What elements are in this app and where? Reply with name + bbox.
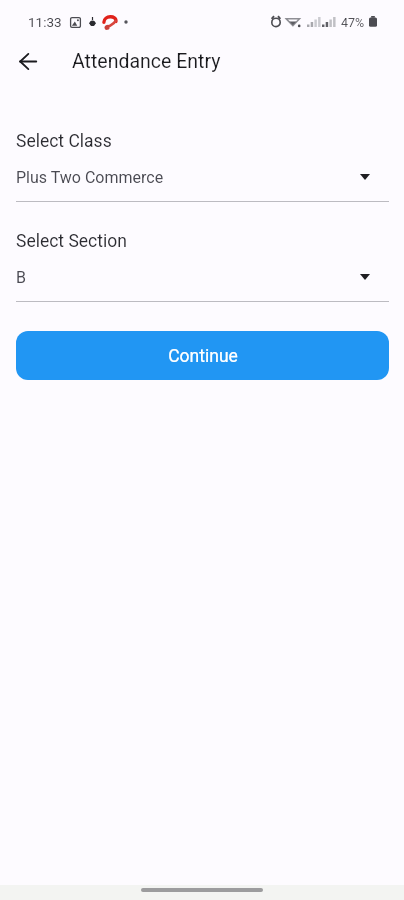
staticText: Plus Two Commerce <box>16 168 360 187</box>
button[interactable]: Plus Two Commerce <box>0 163 404 191</box>
staticText: B <box>16 268 360 287</box>
staticText: 11:33 <box>28 14 62 30</box>
staticText: Attendance Entry <box>72 50 221 73</box>
staticText: Select Class <box>16 131 112 152</box>
button[interactable]: Back <box>10 43 46 79</box>
button[interactable]: Continue <box>16 331 389 380</box>
staticText: 47% <box>341 15 365 30</box>
button[interactable]: B <box>0 263 404 291</box>
staticText: Select Section <box>16 231 127 252</box>
staticText: Continue <box>168 346 238 367</box>
